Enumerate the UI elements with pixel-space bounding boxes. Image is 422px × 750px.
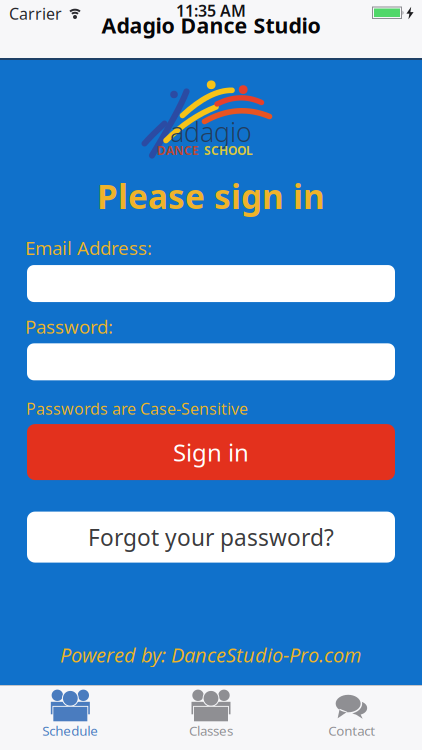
staticText: SCHOOL [204, 142, 253, 158]
button[interactable]: Classes [141, 686, 281, 750]
staticText: Adagio Dance Studio [101, 11, 320, 39]
button[interactable]: Forgot your password? [27, 512, 395, 563]
staticText: Forgot your password? [88, 522, 334, 552]
staticText: 11:35 AM [176, 0, 246, 21]
button[interactable]: Powered by: DanceStudio-Pro.com [60, 641, 362, 668]
staticText: Passwords are Case-Sensitive [26, 398, 248, 419]
button[interactable]: Schedule [0, 686, 141, 750]
staticText: adagio [170, 114, 252, 149]
staticText: Carrier [9, 3, 62, 24]
staticText: Please sign in [97, 174, 325, 218]
staticText: Password: [25, 314, 113, 339]
button[interactable] [27, 265, 395, 302]
staticText: Classes [189, 722, 233, 739]
staticText: Contact [328, 722, 375, 739]
button[interactable] [27, 343, 395, 380]
staticText: DANCE [157, 142, 199, 158]
button[interactable]: Contact [281, 686, 422, 750]
staticText: Sign in [173, 436, 249, 468]
staticText: Email Address: [25, 235, 152, 260]
staticText: Powered by: DanceStudio-Pro.com [60, 641, 362, 668]
staticText: Schedule [42, 722, 98, 739]
button[interactable]: Sign in [27, 424, 395, 480]
